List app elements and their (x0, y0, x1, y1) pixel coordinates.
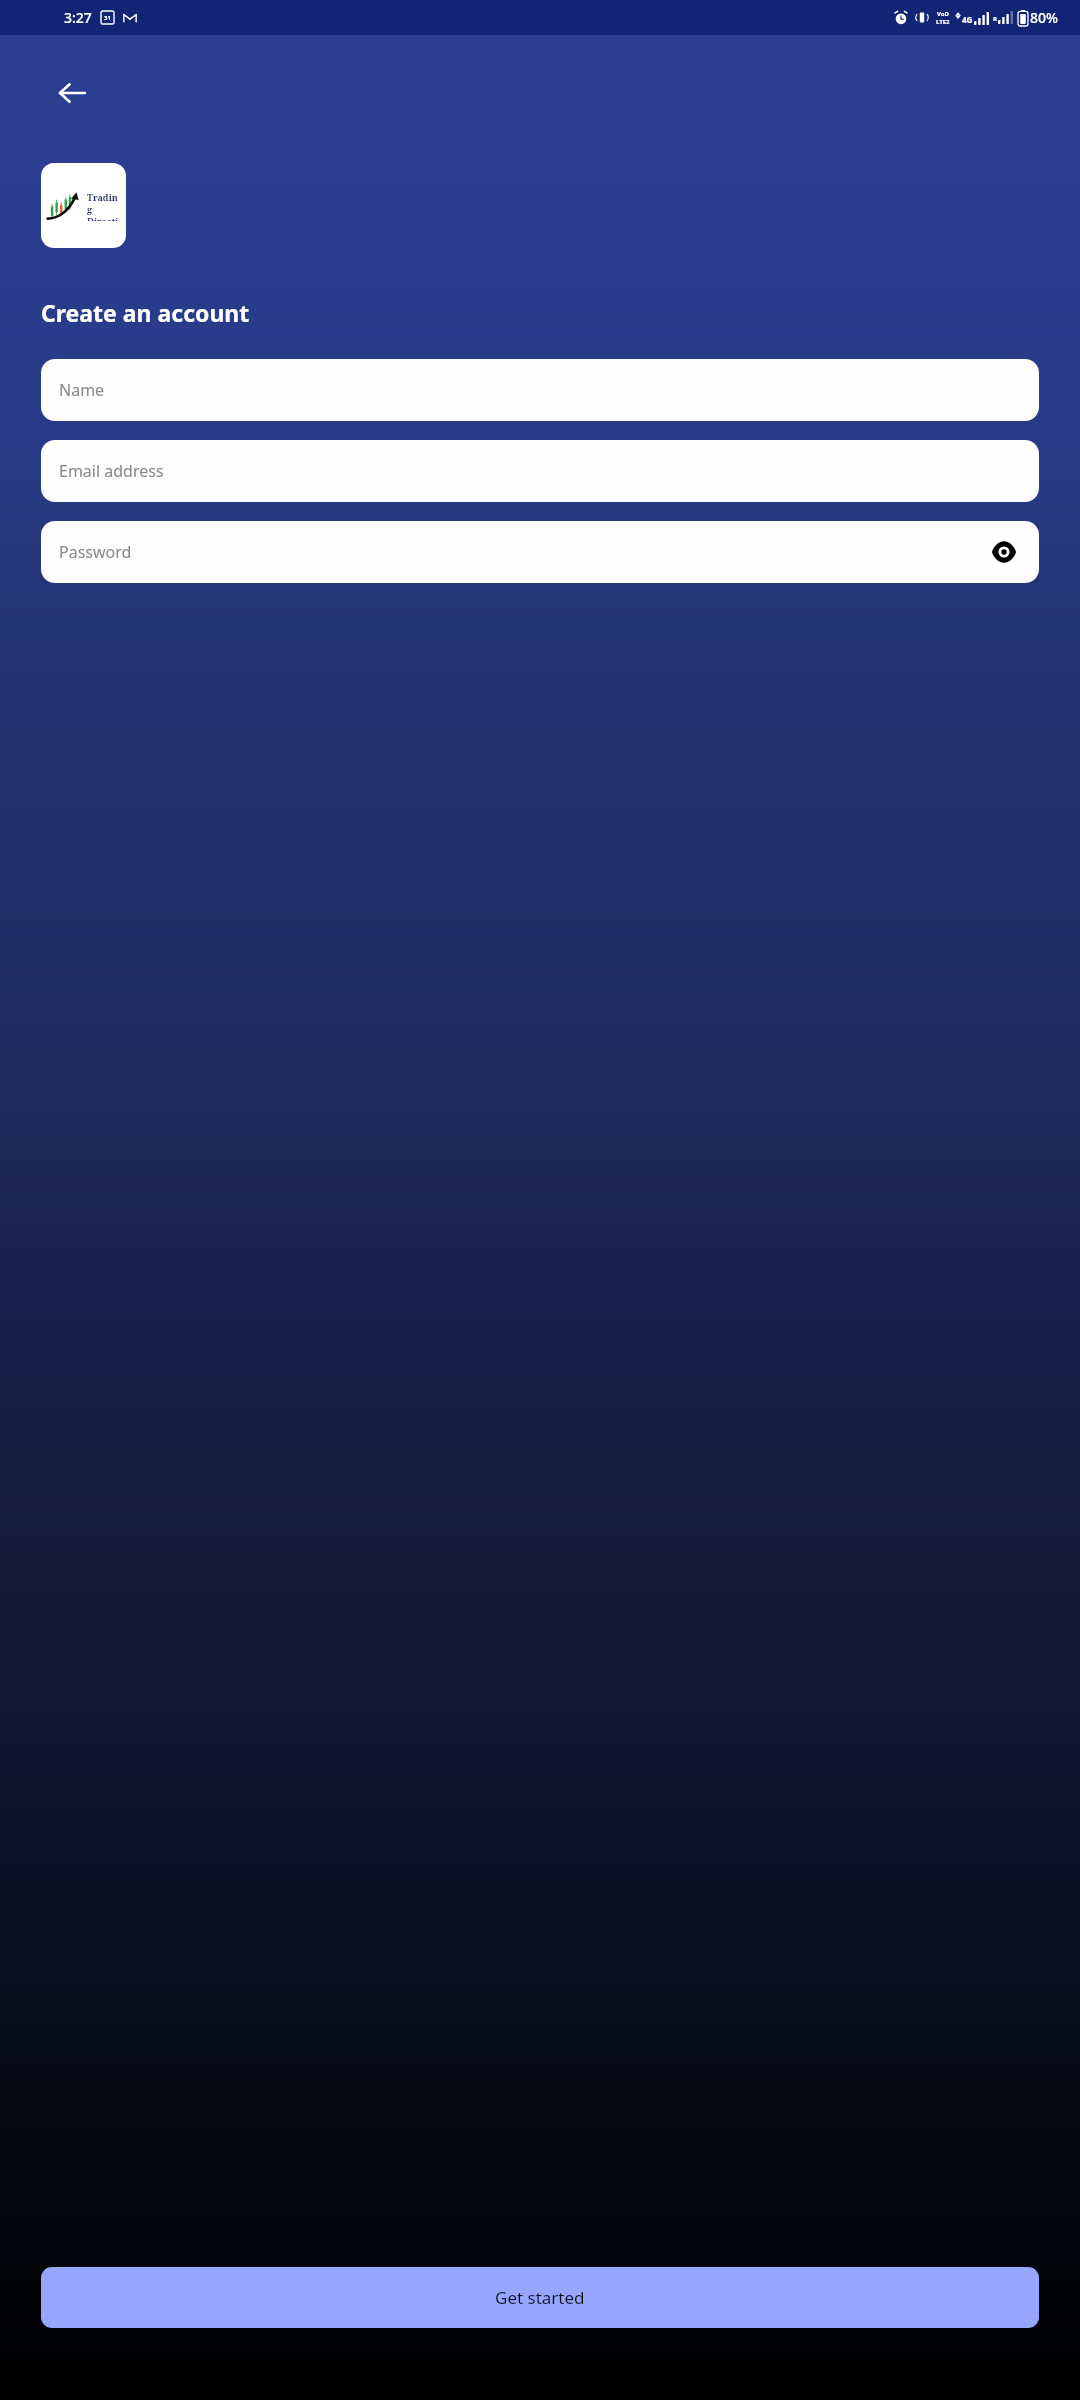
staticText: Password (59, 541, 132, 563)
staticText: Direction (87, 215, 121, 221)
staticText: Email address (59, 460, 164, 482)
staticText: 3:27 (64, 8, 92, 27)
button[interactable]: Get started (41, 2267, 1039, 2328)
button[interactable]: Back (44, 65, 100, 121)
staticText: Get started (495, 2286, 585, 2309)
staticText: R (993, 15, 997, 23)
button[interactable]: Show password (987, 535, 1021, 569)
staticText: VoD (937, 10, 949, 18)
staticText: Name (59, 379, 105, 401)
button[interactable]: Password (41, 521, 1039, 583)
staticText: 31 (104, 14, 111, 22)
staticText: Trading (87, 191, 121, 215)
staticText: LTE2 (936, 18, 950, 26)
staticText: 4G (962, 14, 973, 25)
button[interactable]: Name (41, 359, 1039, 421)
staticText: Create an account (41, 297, 250, 328)
staticText: 80% (1030, 8, 1058, 27)
button[interactable]: Email address (41, 440, 1039, 502)
